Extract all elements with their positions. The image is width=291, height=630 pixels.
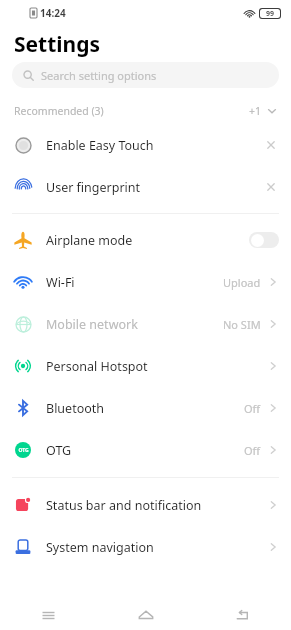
button[interactable]: Recents [0,600,97,630]
staticText: Off [244,443,261,458]
button[interactable]: Personal Hotspot [0,345,291,387]
button[interactable]: Airplane mode toggle [249,232,279,248]
staticText: 99 [266,9,275,18]
staticText: No SIM [223,317,261,332]
button[interactable]: User fingerprint [0,166,291,208]
staticText: Personal Hotspot [46,358,148,375]
button[interactable]: Dismiss [263,137,279,153]
staticText: OTG [46,442,72,459]
button[interactable]: Dismiss [263,179,279,195]
button[interactable]: Wi-Fi [0,261,291,303]
button[interactable]: Airplane mode [0,219,291,261]
staticText: Bluetooth [46,400,105,417]
staticText: OTG [18,447,29,454]
button[interactable]: System navigation [0,526,291,568]
staticText: +1 [249,104,262,118]
staticText: Settings [14,30,101,59]
button[interactable]: Status bar and notification [0,484,291,526]
staticText: Off [244,401,261,416]
staticText: Search setting options [41,68,157,83]
button[interactable]: Mobile network [0,303,291,345]
staticText: Mobile network [46,316,138,333]
staticText: Airplane mode [46,232,133,249]
staticText: Status bar and notification [46,497,202,514]
staticText: 14:24 [40,6,66,20]
button[interactable]: Recommended (3) [14,98,277,124]
button[interactable]: OTG [0,429,291,471]
staticText: Enable Easy Touch [46,137,154,154]
staticText: Upload [223,275,261,290]
button[interactable]: Search setting options [12,62,279,88]
button[interactable]: Bluetooth [0,387,291,429]
button[interactable]: Back [194,600,291,630]
button[interactable]: Enable Easy Touch [0,124,291,166]
staticText: Recommended (3) [14,104,104,118]
staticText: System navigation [46,539,154,556]
staticText: Wi-Fi [46,274,75,291]
button[interactable]: Home [97,600,194,630]
staticText: User fingerprint [46,179,141,196]
